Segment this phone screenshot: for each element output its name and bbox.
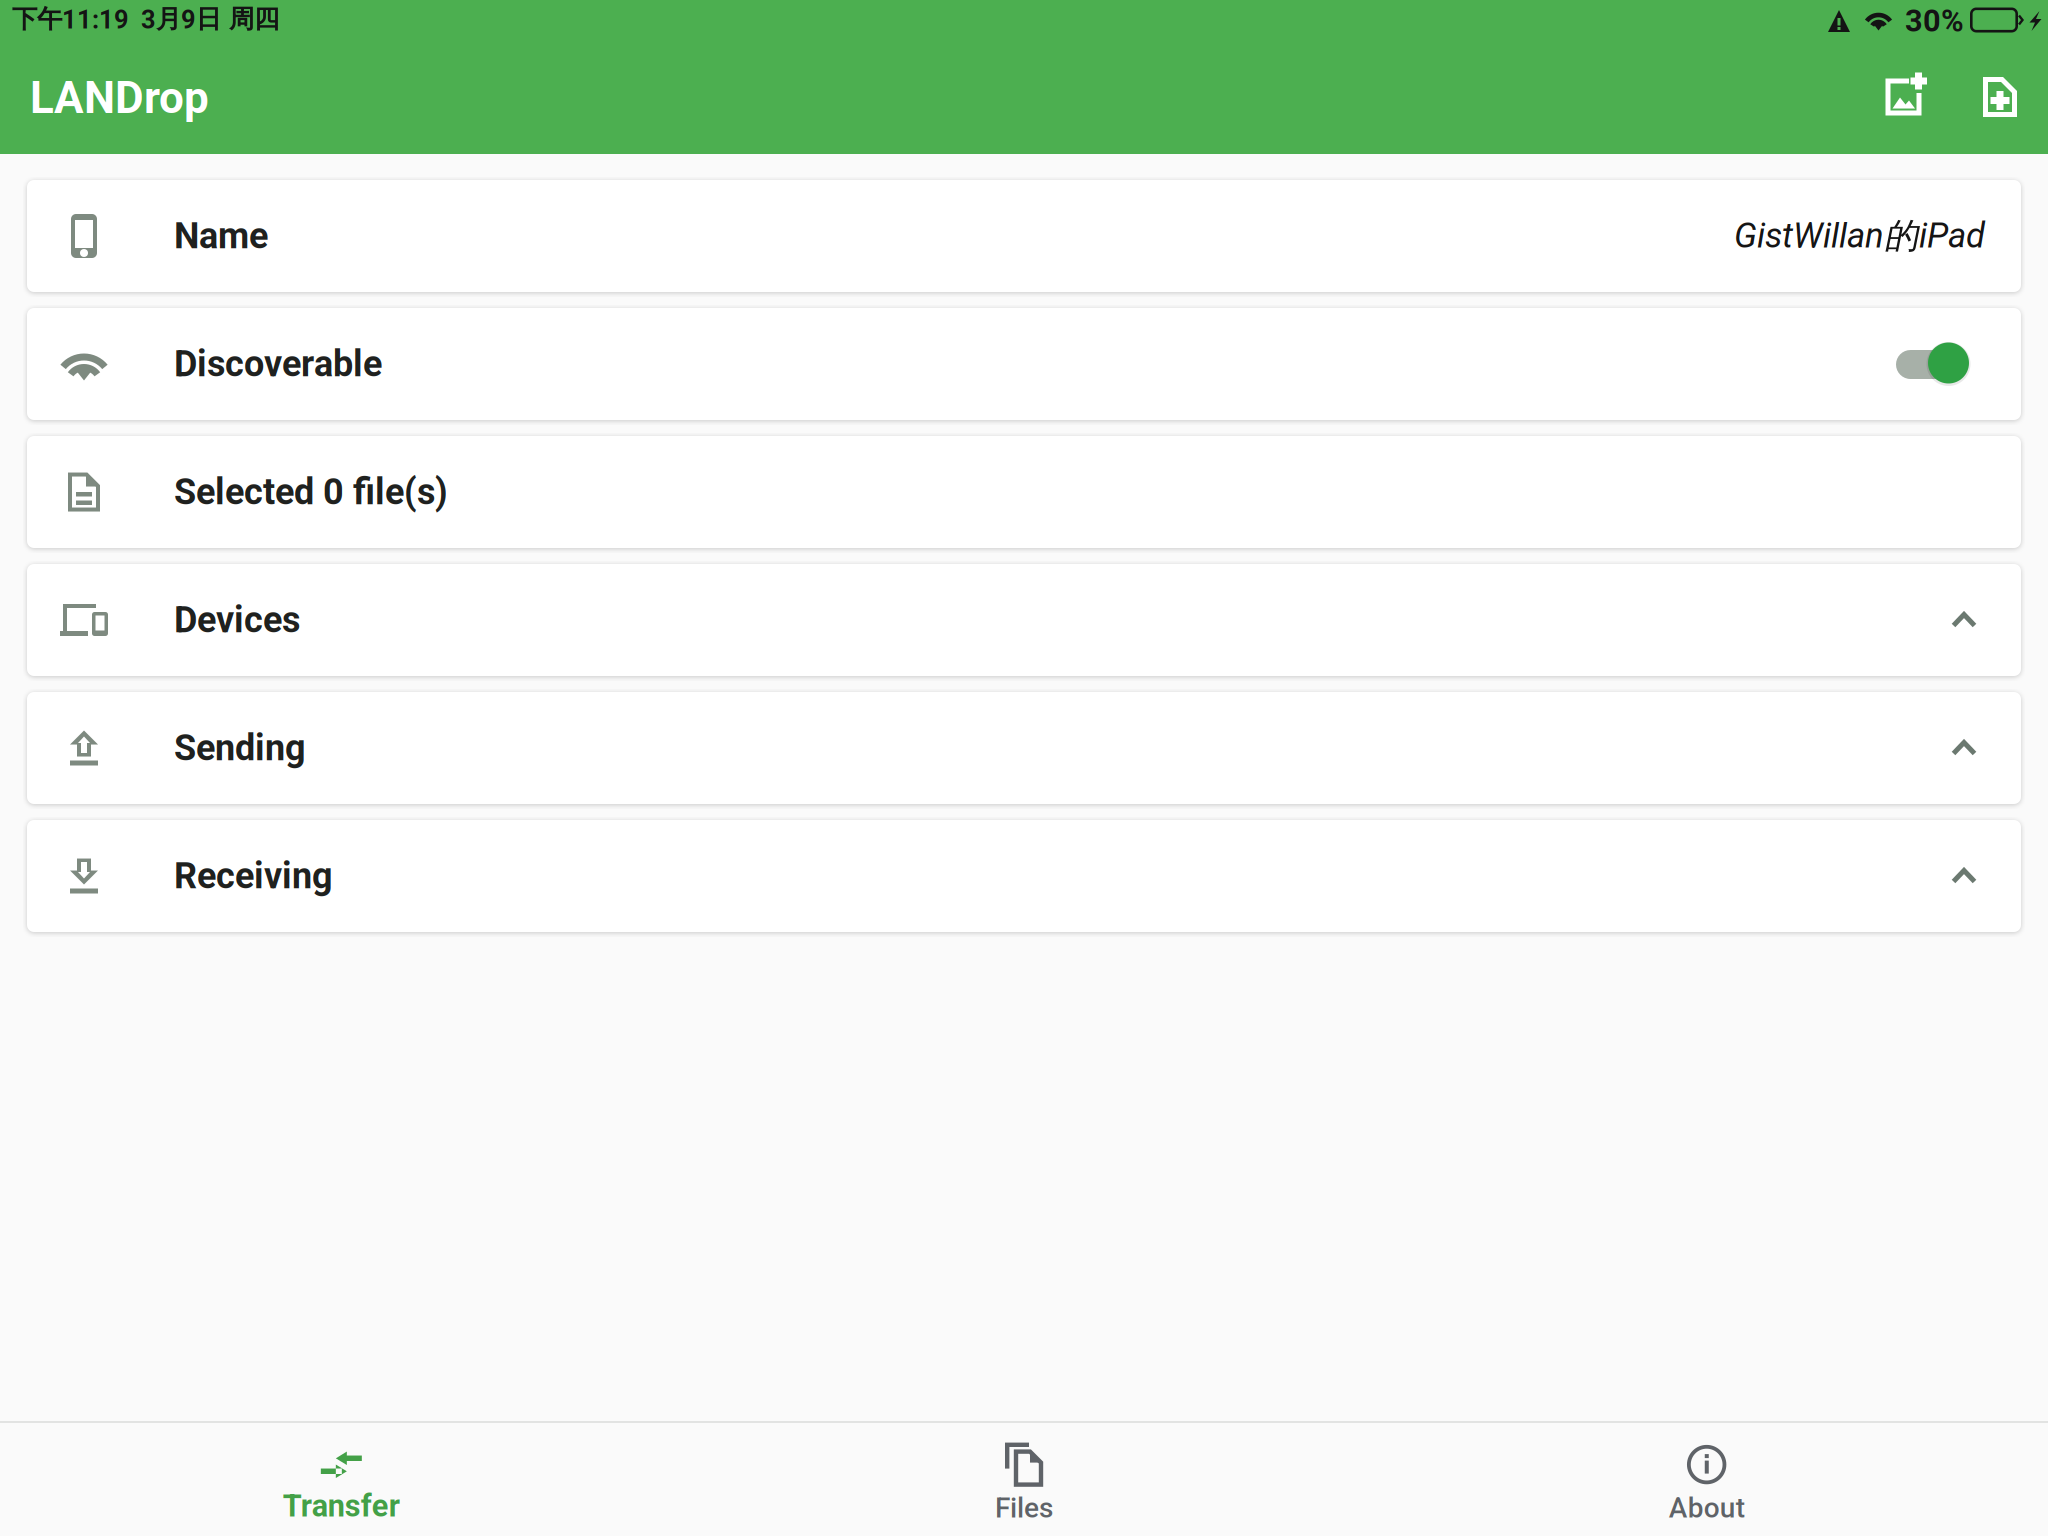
button[interactable]: Transfer — [0, 1423, 683, 1536]
button[interactable]: Name — [27, 180, 2021, 292]
staticText: LANDrop — [30, 72, 209, 124]
staticText: Files — [995, 1492, 1053, 1524]
button[interactable]: Files — [683, 1423, 1365, 1536]
staticText: Sending — [174, 727, 306, 769]
staticText: Devices — [174, 599, 300, 641]
staticText: About — [1669, 1492, 1745, 1524]
button[interactable]: Selected 0 file(s) — [27, 436, 2021, 548]
staticText: Receiving — [174, 855, 333, 897]
button[interactable]: Add images — [1862, 40, 1952, 154]
button[interactable]: About — [1365, 1423, 2048, 1536]
staticText: 下午11:19 3月9日 周四 — [12, 3, 279, 35]
staticText: Name — [174, 215, 268, 257]
staticText: Discoverable — [174, 343, 382, 385]
staticText: Selected 0 file(s) — [174, 471, 448, 513]
button[interactable]: Sending — [27, 692, 2021, 804]
staticText: Transfer — [283, 1488, 400, 1524]
button[interactable]: Add files — [1952, 40, 2048, 154]
button[interactable]: Devices — [27, 564, 2021, 676]
staticText: 30% — [1905, 3, 1964, 39]
staticText: GistWillan的iPad — [1734, 214, 1985, 258]
button[interactable]: Receiving — [27, 820, 2021, 932]
button[interactable]: Discoverable — [1896, 341, 2021, 387]
